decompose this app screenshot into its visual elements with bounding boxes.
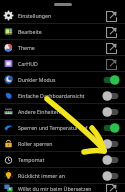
button[interactable]: Open [104,57,118,71]
button[interactable]: Toggle on [102,122,120,134]
button[interactable]: Open [104,9,118,23]
staticText: Einstellungen [18,12,99,19]
button[interactable]: Toggle off [102,170,120,182]
staticText: CarHUD [18,60,99,67]
button[interactable]: Toggle off [102,106,120,118]
button[interactable]: Bearbeite Geschwindigkeitsmesser [0,24,125,39]
staticText: Andere Einheiten [18,108,99,115]
button[interactable]: Roller sperren [0,136,125,151]
button[interactable]: Toggle on [102,74,120,86]
staticText: Rücklicht immer an [18,172,99,179]
button[interactable]: Dunkler Modus [0,72,125,87]
button[interactable]: Toggle off [102,154,120,166]
staticText: Einfache Dashboardansicht [18,92,99,99]
button[interactable]: Einstellungen [0,8,125,23]
button[interactable]: Open [104,41,118,55]
button[interactable]: Theme [0,40,125,55]
button[interactable]: Toggle off [102,90,120,102]
button[interactable]: Rücklicht immer an [0,168,125,183]
button[interactable]: Einfache Dashboardansicht [0,88,125,103]
staticText: Tempomat [18,156,99,163]
button[interactable]: Open [104,184,118,192]
staticText: Willst du mir beim Übersetzen helfen? [18,185,99,192]
button[interactable]: Open [104,25,118,39]
staticText: Theme [18,44,99,51]
button[interactable]: Sperren und Temperatur auf Hauptansicht … [0,120,125,135]
staticText: Sperren und Temperatur auf Hauptansicht … [18,124,99,131]
staticText: Roller sperren [18,140,99,147]
button[interactable]: Willst du mir beim Übersetzen helfen? [0,184,125,192]
button[interactable]: CarHUD [0,56,125,71]
staticText: Bearbeite Geschwindigkeitsmesser [18,28,99,35]
button[interactable]: Andere Einheiten [0,104,125,119]
staticText: Dunkler Modus [18,76,99,83]
button[interactable]: Toggle off [102,138,120,150]
button[interactable]: Tempomat [0,152,125,167]
